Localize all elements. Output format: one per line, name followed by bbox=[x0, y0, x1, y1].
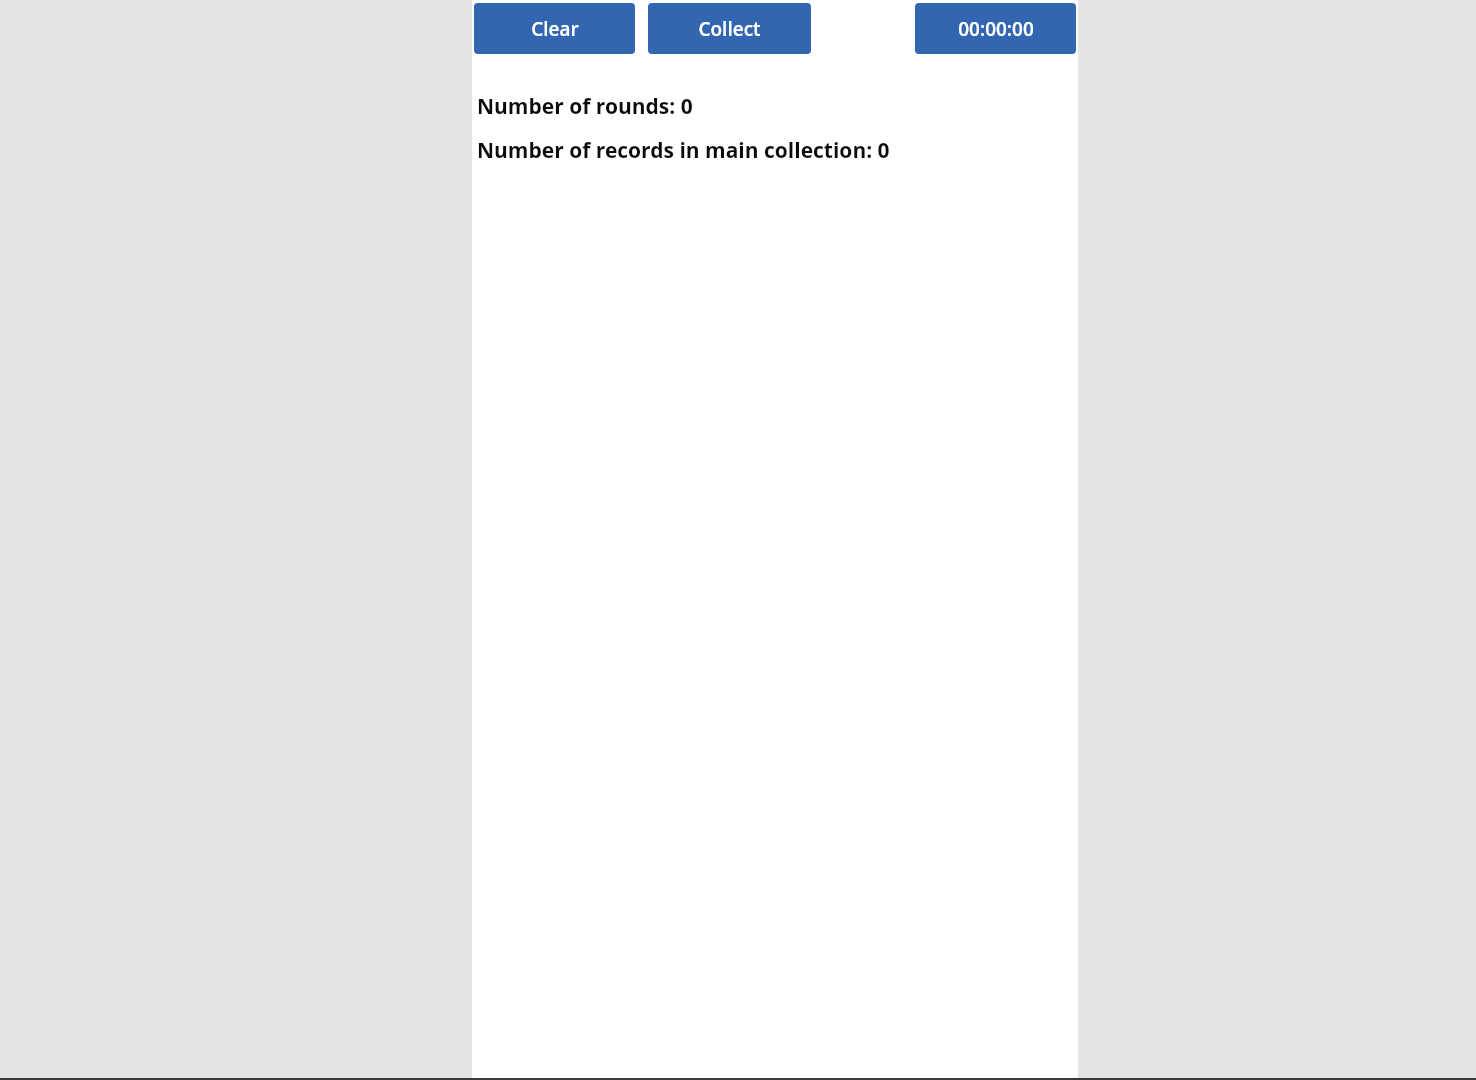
staticText: 00:00:00 bbox=[958, 16, 1034, 42]
button[interactable]: Clear bbox=[474, 3, 635, 54]
staticText: Clear bbox=[531, 16, 579, 42]
staticText: Number of rounds: 0 bbox=[477, 92, 693, 121]
button[interactable]: 00:00:00 bbox=[915, 3, 1076, 54]
button[interactable]: Collect bbox=[648, 3, 811, 54]
staticText: Collect bbox=[698, 16, 761, 42]
staticText: Number of records in main collection: 0 bbox=[477, 136, 890, 165]
